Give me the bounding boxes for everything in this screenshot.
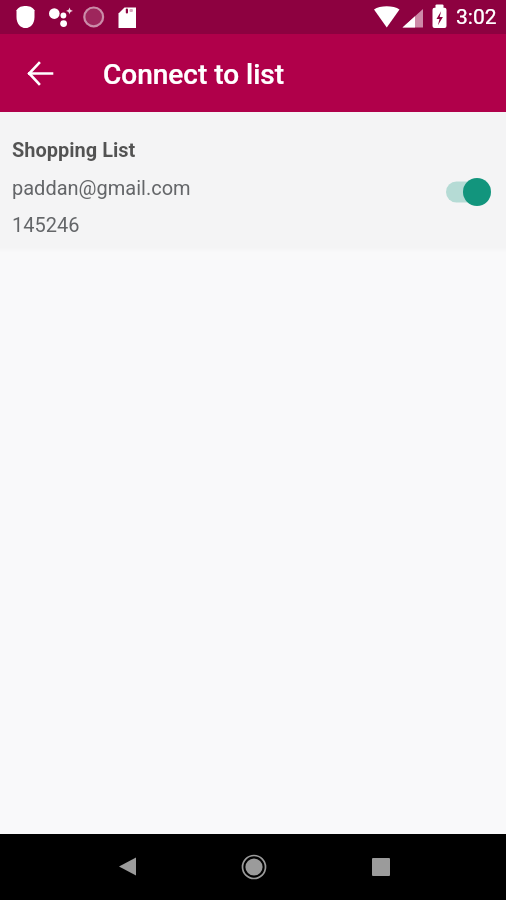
- staticText: Connect to list: [103, 58, 285, 91]
- staticText: 3:02: [456, 5, 497, 30]
- button[interactable]: Connection toggle: [446, 173, 501, 211]
- button[interactable]: Recent apps: [352, 838, 409, 895]
- staticText: paddan@gmail.com: [12, 176, 191, 199]
- staticText: 145246: [12, 213, 80, 236]
- button[interactable]: Back: [99, 838, 156, 895]
- button[interactable]: Back: [14, 47, 66, 99]
- button[interactable]: Shopping List: [0, 112, 506, 252]
- button[interactable]: Home: [225, 838, 282, 895]
- staticText: Shopping List: [12, 138, 136, 161]
